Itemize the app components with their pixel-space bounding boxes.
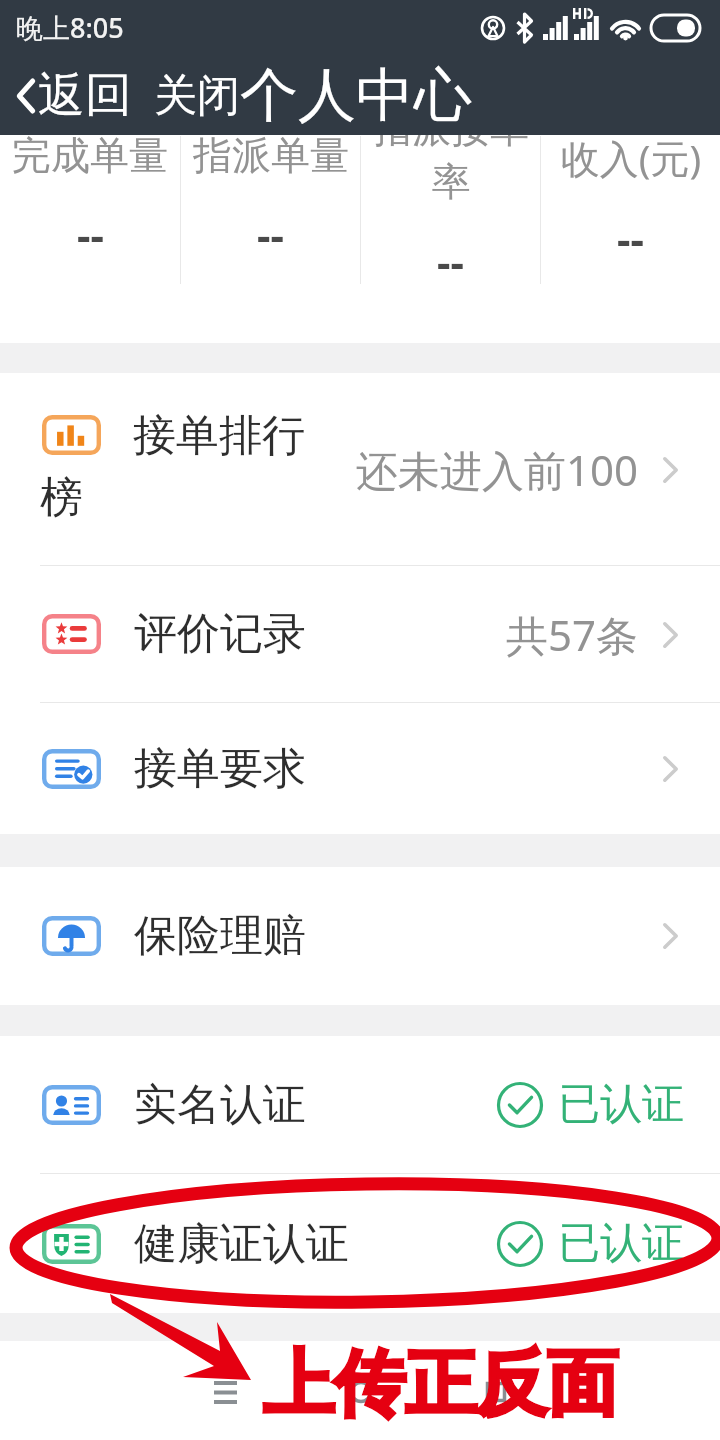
button[interactable]: 指派接单率 [361,101,540,343]
staticText: -- [257,206,284,263]
staticText: 收入(元) [550,131,712,184]
button[interactable]: 接单要求 [0,703,720,834]
staticText: 个人中心 [240,59,472,132]
button[interactable]: 收入(元) [541,101,720,343]
button[interactable]: 关闭 [154,69,240,123]
staticText: 上传正反面 [263,1340,618,1429]
staticText: 完成单量 [9,131,171,180]
staticText: -- [617,210,644,267]
staticText: 保险理赔 [134,909,306,963]
staticText: 评价记录 [134,607,306,661]
staticText: 指派接单率 [370,104,532,207]
staticText: 上传正反面 [263,1340,618,1429]
button[interactable]: 保险理赔 [0,867,720,1005]
staticText: 健康证认证 [134,1217,349,1271]
staticText: 实名认证 [134,1078,306,1132]
staticText: 共57条 [506,606,639,663]
button[interactable]: 主页 [293,1343,428,1440]
staticText: 已认证 [558,1217,684,1270]
staticText: 接单排行 [133,409,305,463]
staticText: -- [77,206,104,263]
staticText: 晚上8:05 [16,9,124,46]
button[interactable]: 接单排行 [0,373,720,565]
staticText: -- [437,233,464,290]
button[interactable]: 健康证认证 [0,1174,720,1313]
staticText: 返回 [38,66,132,125]
button[interactable]: 返回 [428,1343,563,1440]
button[interactable]: 返回 [14,66,132,125]
button[interactable]: 菜单 [158,1343,293,1440]
button[interactable]: 实名认证 [0,1036,720,1173]
button[interactable]: 评价记录 [0,566,720,702]
button[interactable]: 指派单量 [181,101,360,343]
staticText: 榜 [40,471,83,525]
staticText: 接单要求 [134,742,306,796]
staticText: 已认证 [558,1078,684,1131]
button[interactable]: 完成单量 [0,101,180,343]
staticText: 指派单量 [190,131,352,180]
staticText: 还未进入前100 [356,441,639,498]
